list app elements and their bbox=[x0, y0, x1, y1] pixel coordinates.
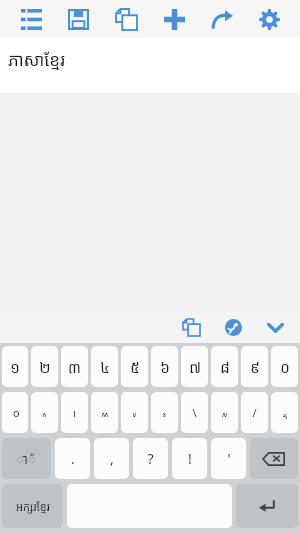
staticText: ១ bbox=[10, 357, 20, 377]
button[interactable]: ៴ bbox=[121, 392, 148, 433]
button[interactable]: Copy bbox=[109, 2, 143, 36]
staticText: ' bbox=[227, 449, 231, 468]
button[interactable]: , bbox=[94, 438, 129, 479]
staticText: ៱ bbox=[42, 405, 47, 420]
staticText: ? bbox=[147, 449, 154, 468]
staticText: ៦ bbox=[160, 357, 170, 377]
button[interactable]: ២ bbox=[31, 346, 58, 387]
staticText: ៳ bbox=[101, 405, 109, 420]
button[interactable]: Khmer layout bbox=[2, 484, 63, 528]
staticText: ៥ bbox=[130, 357, 140, 377]
button[interactable]: Change language bbox=[218, 312, 248, 342]
button[interactable]: ៩ bbox=[241, 346, 268, 387]
staticText: , bbox=[110, 449, 114, 468]
button[interactable]: Enter bbox=[236, 484, 298, 528]
staticText: ı bbox=[73, 405, 76, 420]
button[interactable]: ı bbox=[61, 392, 88, 433]
button[interactable]: ៨ bbox=[211, 346, 238, 387]
button[interactable]: ៳ bbox=[91, 392, 118, 433]
button[interactable]: . bbox=[55, 438, 90, 479]
button[interactable]: ? bbox=[133, 438, 168, 479]
staticText: / bbox=[252, 405, 257, 420]
button[interactable]: Settings bbox=[252, 2, 286, 36]
button[interactable]: Save bbox=[61, 2, 95, 36]
button[interactable]: ៧ bbox=[181, 346, 208, 387]
button[interactable]: ១ bbox=[2, 346, 28, 387]
staticText: ា៉ bbox=[16, 450, 37, 468]
button[interactable]: Clipboard bbox=[176, 312, 206, 342]
button[interactable]: ៱ bbox=[31, 392, 58, 433]
button[interactable]: ៵ bbox=[151, 392, 178, 433]
staticText: ៧ bbox=[189, 357, 201, 377]
button[interactable]: Share bbox=[205, 2, 239, 36]
staticText: ៵ bbox=[162, 405, 167, 420]
staticText: . bbox=[71, 449, 75, 468]
staticText: o bbox=[10, 405, 20, 420]
staticText: អក្សរខ្មែរ bbox=[16, 499, 50, 514]
button[interactable]: ៥ bbox=[121, 346, 148, 387]
button[interactable]: Hide keyboard bbox=[260, 312, 290, 342]
button[interactable]: List bbox=[14, 2, 48, 36]
staticText: ៣ bbox=[68, 357, 81, 377]
button[interactable]: / bbox=[241, 392, 268, 433]
button[interactable]: ' bbox=[211, 438, 246, 479]
button[interactable]: Add bbox=[157, 2, 191, 36]
button[interactable]: ៣ bbox=[61, 346, 88, 387]
staticText: ! bbox=[188, 449, 192, 468]
button[interactable]: o bbox=[2, 392, 28, 433]
staticText: ៩ bbox=[250, 357, 260, 377]
staticText: ៨ bbox=[220, 357, 230, 377]
button[interactable]: Symbols bbox=[2, 438, 51, 479]
staticText: ៹ bbox=[282, 405, 288, 420]
button[interactable]: ៷ bbox=[211, 392, 238, 433]
staticText: \ bbox=[192, 405, 197, 420]
button[interactable]: ! bbox=[172, 438, 207, 479]
button[interactable]: ៹ bbox=[271, 392, 298, 433]
staticText: ៤ bbox=[100, 357, 110, 377]
staticText: ០ bbox=[280, 357, 290, 377]
button[interactable]: ៤ bbox=[91, 346, 118, 387]
button[interactable]: ៦ bbox=[151, 346, 178, 387]
staticText: ២ bbox=[39, 357, 51, 377]
staticText: ៴ bbox=[132, 405, 137, 420]
button[interactable]: Backspace bbox=[250, 438, 298, 479]
staticText: ភាសាខ្មែរ bbox=[8, 48, 65, 71]
button[interactable]: ០ bbox=[271, 346, 298, 387]
button[interactable]: \ bbox=[181, 392, 208, 433]
staticText: ៷ bbox=[221, 405, 228, 420]
